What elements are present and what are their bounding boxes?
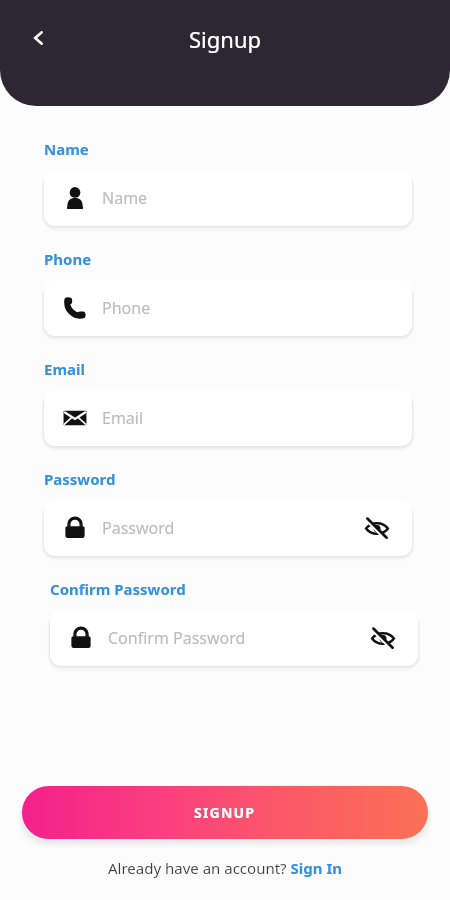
button[interactable]: Toggle password visibility bbox=[366, 621, 400, 655]
staticText: Email bbox=[44, 359, 85, 379]
button[interactable]: SIGNUP bbox=[22, 786, 428, 839]
staticText: Confirm Password bbox=[108, 627, 246, 649]
button[interactable]: Email bbox=[44, 390, 412, 446]
staticText: Password bbox=[102, 517, 175, 539]
button[interactable]: Name bbox=[44, 170, 412, 226]
staticText: Password bbox=[44, 469, 116, 489]
button[interactable]: Password bbox=[44, 500, 412, 556]
staticText: Name bbox=[44, 139, 89, 159]
button[interactable]: Toggle password visibility bbox=[360, 511, 394, 545]
staticText: Phone bbox=[102, 297, 151, 319]
button[interactable]: Back bbox=[18, 16, 62, 60]
button[interactable]: Already have an account? Sign In bbox=[108, 858, 342, 878]
staticText: SIGNUP bbox=[194, 803, 256, 822]
button[interactable]: Phone bbox=[44, 280, 412, 336]
staticText: Confirm Password bbox=[50, 579, 186, 599]
staticText: Name bbox=[102, 187, 148, 209]
staticText: Already have an account? Sign In bbox=[108, 858, 342, 878]
staticText: Signup bbox=[189, 24, 262, 54]
staticText: Phone bbox=[44, 249, 92, 269]
button[interactable]: Confirm Password bbox=[50, 610, 418, 666]
staticText: Email bbox=[102, 407, 144, 429]
